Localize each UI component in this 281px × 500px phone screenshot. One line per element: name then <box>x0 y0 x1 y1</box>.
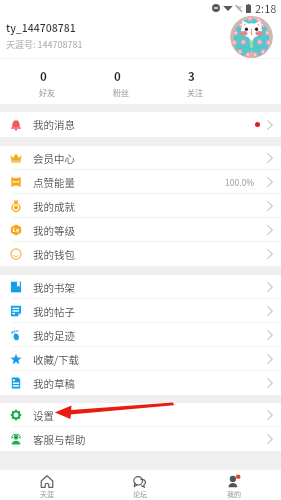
staticText: 设置 <box>33 408 54 423</box>
button[interactable]: 收藏/下载 <box>0 347 281 371</box>
staticText: 收藏/下载 <box>33 352 80 367</box>
button[interactable]: 天涯 <box>0 470 93 500</box>
staticText: 关注 <box>187 87 203 99</box>
staticText: 天涯 <box>40 489 54 499</box>
staticText: 天涯号: 144708781 <box>6 38 83 51</box>
button[interactable]: 我的钱包 <box>0 242 281 266</box>
staticText: 我的钱包 <box>33 247 75 262</box>
button[interactable]: 我的 <box>187 470 281 500</box>
button[interactable]: 设置 <box>0 403 281 427</box>
staticText: 我的等级 <box>33 223 75 238</box>
staticText: 粉丝 <box>113 87 129 99</box>
button[interactable]: 论坛 <box>93 470 187 500</box>
button[interactable]: 0 <box>80 59 154 99</box>
button[interactable]: 我的消息 <box>0 112 281 137</box>
button[interactable]: 我的等级 <box>0 218 281 242</box>
staticText: 会员中心 <box>33 151 75 166</box>
staticText: 我的草稿 <box>33 376 75 391</box>
button[interactable]: Profile avatar <box>230 16 273 58</box>
button[interactable]: 3 <box>154 59 228 99</box>
staticText: 我的消息 <box>33 117 75 132</box>
staticText: 客服与帮助 <box>33 432 86 447</box>
button[interactable]: 会员中心 <box>0 146 281 170</box>
button[interactable]: 我的足迹 <box>0 323 281 347</box>
staticText: 我的书架 <box>33 280 75 295</box>
staticText: 论坛 <box>133 489 147 499</box>
staticText: 0 <box>114 68 121 85</box>
staticText: 我的成就 <box>33 199 75 214</box>
staticText: 好友 <box>39 87 55 99</box>
button[interactable]: 客服与帮助 <box>0 427 281 451</box>
staticText: ty_144708781 <box>6 20 76 35</box>
button[interactable]: 0 <box>6 59 80 99</box>
staticText: 我的帖子 <box>33 304 75 319</box>
staticText: 100.0% <box>225 176 255 188</box>
staticText: 我的足迹 <box>33 328 75 343</box>
button[interactable]: 我的成就 <box>0 194 281 218</box>
staticText: 点赞能量 <box>33 175 75 190</box>
button[interactable]: 我的草稿 <box>0 371 281 395</box>
button[interactable]: 点赞能量 <box>0 170 281 194</box>
staticText: 3 <box>188 68 195 85</box>
staticText: 2:18 <box>255 0 277 16</box>
staticText: 我的 <box>227 489 241 499</box>
staticText: 0 <box>40 68 47 85</box>
button[interactable]: 我的书架 <box>0 275 281 299</box>
button[interactable]: 我的帖子 <box>0 299 281 323</box>
